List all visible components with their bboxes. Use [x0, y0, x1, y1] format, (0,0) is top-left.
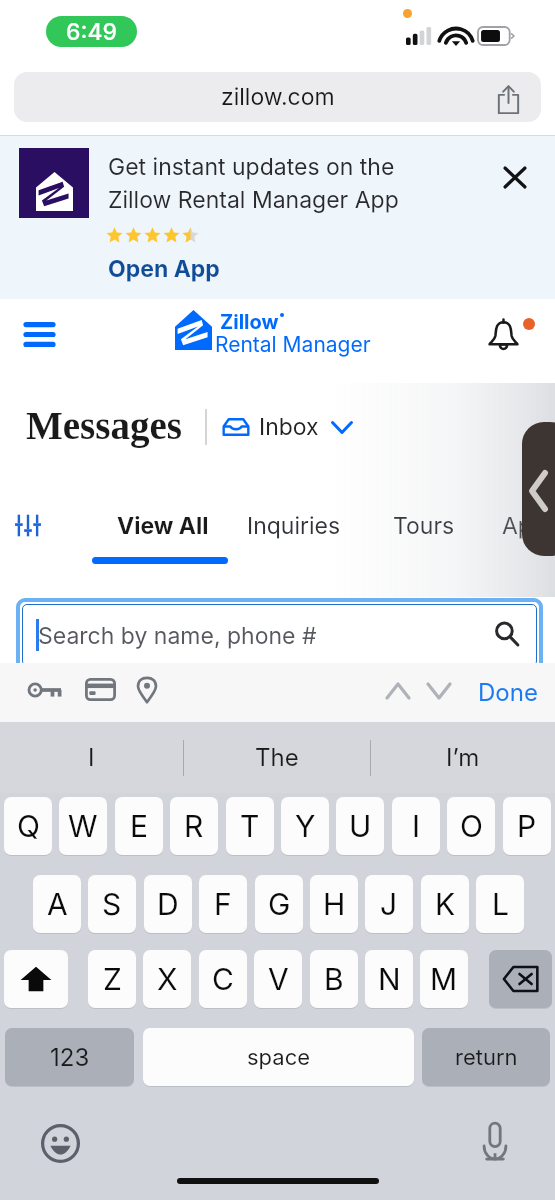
staticText: Tours [393, 512, 455, 540]
staticText: Search by name, phone # [38, 622, 317, 650]
staticText: Applications [502, 512, 555, 540]
button[interactable]: Emoji [41, 1124, 80, 1163]
staticText: O [460, 808, 483, 844]
button[interactable]: Y [281, 797, 329, 855]
button[interactable]: Shift [4, 950, 68, 1008]
button[interactable]: Notifications [488, 319, 519, 351]
button[interactable]: Applications [502, 512, 555, 540]
button[interactable]: S [88, 875, 136, 933]
staticText: V [268, 961, 289, 997]
button[interactable]: Inbox [222, 409, 353, 445]
staticText: Get instant updates on the [108, 153, 395, 181]
staticText: I [88, 743, 95, 772]
button[interactable]: Backspace [489, 950, 552, 1008]
staticText: Messages [26, 404, 182, 447]
button[interactable]: Credit card [85, 678, 116, 701]
staticText: zillow.com [221, 83, 335, 111]
staticText: K [435, 886, 456, 922]
staticText: T [240, 808, 260, 844]
staticText: J [380, 886, 398, 922]
button[interactable]: Tours [393, 512, 455, 540]
staticText: Rental Manager [215, 332, 371, 357]
staticText: L [492, 886, 509, 922]
button[interactable]: M [420, 950, 468, 1008]
staticText: space [247, 1044, 311, 1071]
button[interactable]: I’m [371, 722, 555, 793]
button[interactable]: Location [137, 677, 157, 703]
button[interactable]: zillow.com [14, 72, 541, 122]
button[interactable]: E [115, 797, 163, 855]
button[interactable]: Z [88, 950, 136, 1008]
button[interactable]: Passwords [28, 679, 62, 701]
button[interactable]: J [365, 875, 413, 933]
staticText: 123 [50, 1043, 90, 1072]
button[interactable]: C [199, 950, 247, 1008]
button[interactable]: return [422, 1028, 550, 1086]
button[interactable]: N [365, 950, 413, 1008]
button[interactable]: W [59, 797, 107, 855]
button[interactable]: Q [4, 797, 52, 855]
staticText: G [268, 886, 291, 922]
button[interactable]: G [255, 875, 303, 933]
button[interactable]: R [170, 797, 218, 855]
button[interactable]: D [144, 875, 192, 933]
staticText: X [157, 961, 178, 997]
button[interactable]: P [503, 797, 551, 855]
button[interactable]: H [310, 875, 358, 933]
staticText: Done [478, 678, 538, 707]
staticText: D [157, 886, 179, 922]
button[interactable]: 123 [5, 1028, 134, 1086]
button[interactable] [16, 598, 543, 672]
button[interactable]: V [254, 950, 302, 1008]
button[interactable]: Next field [428, 684, 450, 698]
button[interactable]: F [199, 875, 247, 933]
staticText: Y [295, 808, 316, 844]
button[interactable] [92, 504, 228, 558]
button[interactable]: Done [478, 678, 538, 707]
staticText: U [349, 808, 372, 844]
button[interactable]: K [421, 875, 469, 933]
staticText: I’m [446, 743, 480, 772]
staticText: The [255, 743, 299, 772]
staticText: R [184, 808, 204, 844]
staticText: Inquiries [247, 512, 341, 540]
button[interactable]: I [392, 797, 440, 855]
button[interactable]: Share [497, 85, 520, 114]
staticText: H [323, 886, 346, 922]
staticText: B [324, 961, 344, 997]
staticText: W [68, 808, 98, 844]
button[interactable]: A [33, 875, 81, 933]
button[interactable]: Close banner [495, 158, 535, 198]
staticText: I [412, 808, 421, 844]
button[interactable]: 6:49 [46, 16, 137, 47]
button[interactable]: The [184, 722, 370, 793]
staticText: P [517, 808, 537, 844]
button[interactable]: B [310, 950, 358, 1008]
staticText: E [130, 808, 149, 844]
button[interactable]: space [143, 1028, 414, 1086]
button[interactable]: Menu [26, 322, 53, 347]
button[interactable]: Previous field [387, 684, 409, 698]
button[interactable]: O [447, 797, 495, 855]
staticText: Q [17, 808, 40, 844]
button[interactable]: Dictation [482, 1122, 508, 1161]
button[interactable]: Open App [108, 255, 220, 283]
button[interactable]: U [336, 797, 384, 855]
button[interactable]: I [0, 722, 183, 793]
staticText: View All [117, 512, 209, 540]
button[interactable]: L [476, 875, 524, 933]
staticText: A [47, 886, 68, 922]
staticText: Zillow [220, 310, 279, 334]
staticText: F [214, 886, 232, 922]
button[interactable]: Inquiries [247, 512, 341, 540]
button[interactable]: Back to app [522, 422, 555, 556]
staticText: M [430, 961, 458, 997]
staticText: C [212, 961, 234, 997]
button[interactable]: T [226, 797, 274, 855]
staticText: S [102, 886, 122, 922]
button[interactable]: X [143, 950, 191, 1008]
staticText: N [378, 961, 401, 997]
staticText: Open App [108, 255, 220, 283]
staticText: Zillow Rental Manager App [108, 186, 399, 214]
button[interactable]: Filter [16, 514, 40, 537]
